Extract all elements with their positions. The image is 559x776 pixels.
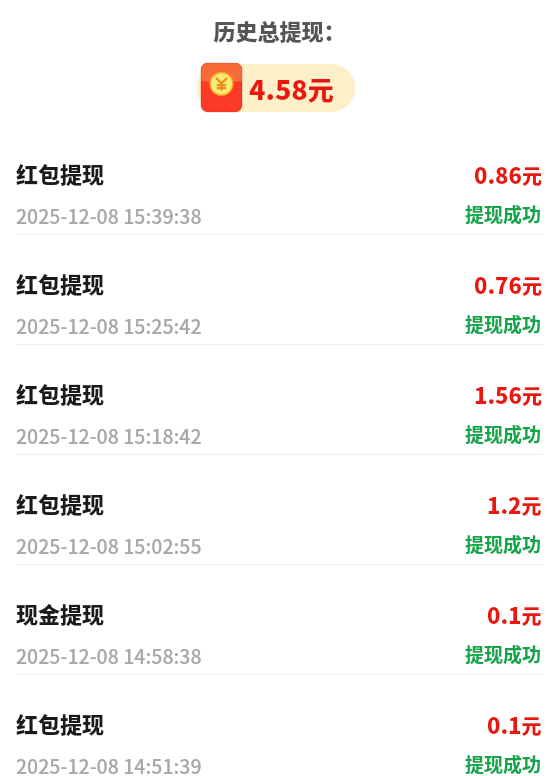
button[interactable]: 红包提现 [0, 675, 559, 776]
staticText: 提现成功 [465, 310, 542, 338]
staticText: 红包提现 [16, 377, 105, 409]
button[interactable]: 现金提现 [0, 565, 559, 675]
button[interactable]: 红包 [197, 63, 355, 113]
staticText: 提现成功 [465, 420, 542, 448]
button[interactable]: 红包提现 [0, 125, 559, 235]
staticText: 0.76元 [474, 268, 542, 300]
staticText: 4.58元 [249, 69, 334, 108]
staticText: 1.56元 [474, 378, 542, 410]
staticText: 2025-12-08 14:51:39 [16, 751, 202, 776]
other: 红包 [201, 63, 242, 112]
button[interactable]: 红包提现 [0, 455, 559, 565]
staticText: 0.86元 [474, 158, 542, 190]
staticText: 红包提现 [16, 707, 105, 739]
staticText: 提现成功 [465, 200, 542, 228]
staticText: 红包提现 [16, 487, 105, 519]
staticText: 现金提现 [16, 597, 105, 629]
staticText: 红包提现 [16, 267, 105, 299]
button[interactable]: 红包提现 [0, 345, 559, 455]
staticText: 2025-12-08 15:25:42 [16, 311, 202, 339]
staticText: 历史总提现： [213, 14, 346, 46]
staticText: 2025-12-08 15:18:42 [16, 421, 202, 449]
staticText: 2025-12-08 15:39:38 [16, 201, 202, 229]
staticText: 2025-12-08 14:58:38 [16, 641, 202, 669]
staticText: 提现成功 [465, 640, 542, 668]
staticText: 红包提现 [16, 157, 105, 189]
staticText: 提现成功 [465, 750, 542, 776]
staticText: 1.2元 [487, 488, 542, 520]
button[interactable]: 红包提现 [0, 235, 559, 345]
staticText: 提现成功 [465, 530, 542, 558]
staticText: 0.1元 [487, 708, 542, 740]
staticText: 2025-12-08 15:02:55 [16, 531, 202, 559]
staticText: 0.1元 [487, 598, 542, 630]
